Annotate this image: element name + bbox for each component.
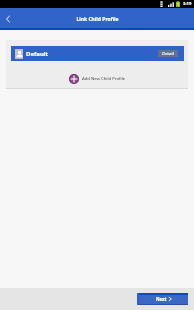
button[interactable]: Back [0,8,15,30]
button[interactable]: Detail [158,50,178,57]
staticText: Default [26,50,49,58]
button[interactable]: Next [137,293,188,305]
button[interactable]: Default [11,46,184,61]
staticText: 3:19 [183,1,192,7]
staticText: Next [156,296,167,302]
staticText: Add New Child Profile [82,76,126,82]
staticText: Link Child Profile [76,16,119,23]
button[interactable]: Add New Child Profile [6,61,188,88]
staticText: Detail [162,51,174,56]
